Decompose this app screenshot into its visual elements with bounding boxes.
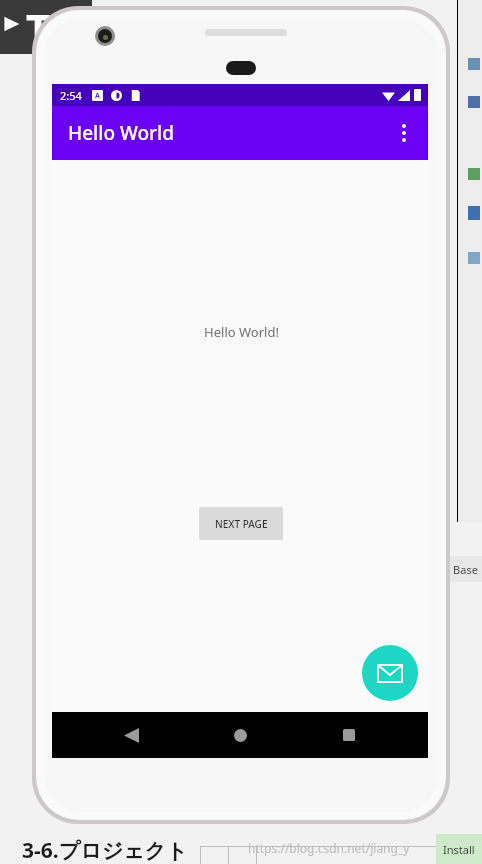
staticText: Install xyxy=(443,842,475,857)
button[interactable]: Back xyxy=(101,712,161,758)
button[interactable]: Home xyxy=(210,712,270,758)
button[interactable]: Email xyxy=(362,645,418,701)
staticText: Hello World xyxy=(68,120,174,146)
button[interactable]: NEXT PAGE xyxy=(199,507,283,540)
staticText: Hello World! xyxy=(204,323,279,341)
staticText: A xyxy=(95,91,100,101)
button[interactable]: More options xyxy=(380,109,428,157)
staticText: T xyxy=(56,0,81,57)
staticText: 3-6.プロジェクト xyxy=(22,836,188,864)
staticText: NEXT PAGE xyxy=(215,517,268,531)
staticText: T xyxy=(26,0,51,57)
staticText: https://blog.csdn.net/jiang_y xyxy=(248,840,410,856)
button[interactable]: Install xyxy=(436,834,482,864)
button[interactable]: Recents xyxy=(319,712,379,758)
staticText: e Base xyxy=(444,562,478,577)
staticText: 2:54 xyxy=(60,88,82,103)
